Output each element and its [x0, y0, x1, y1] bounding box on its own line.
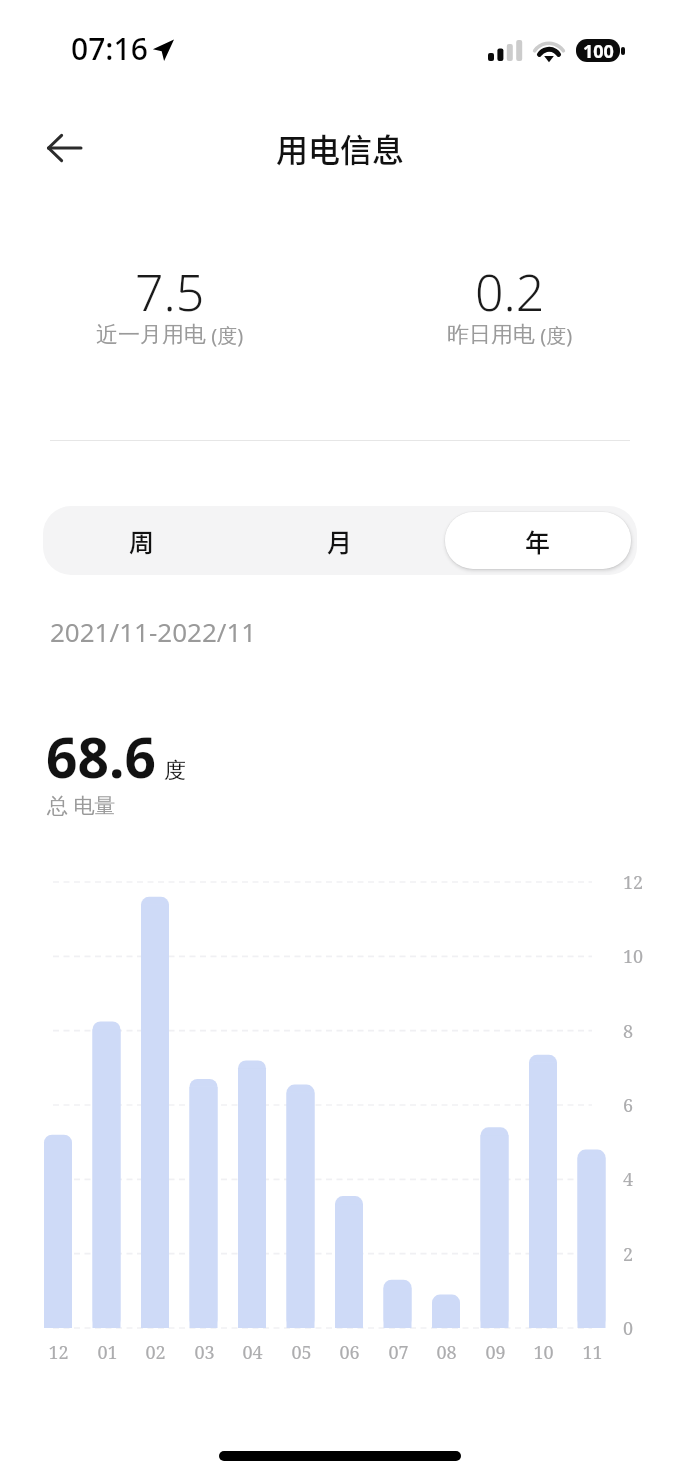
staticText: 2021/11-2022/11 [50, 614, 257, 649]
staticText: 近一月用电 [96, 321, 206, 349]
staticText: 总 电量 [47, 791, 116, 820]
button[interactable]: 月 [247, 512, 433, 569]
staticText: 7.5 [135, 258, 205, 326]
staticText: 10 [533, 1340, 554, 1364]
staticText: 周 [129, 523, 155, 559]
button[interactable]: 年 [445, 512, 631, 569]
staticText: 度 [164, 757, 186, 785]
staticText: 11 [582, 1340, 603, 1364]
staticText: 10 [623, 944, 644, 969]
staticText: 100 [583, 39, 614, 62]
staticText: 01 [97, 1340, 118, 1364]
staticText: 8 [623, 1019, 634, 1044]
staticText: 06 [339, 1340, 360, 1364]
staticText: (度) [535, 322, 573, 349]
staticText: 2 [623, 1242, 634, 1267]
staticText: 用电信息 [276, 125, 405, 171]
staticText: 68.6 [46, 719, 156, 794]
staticText: 05 [291, 1340, 312, 1364]
staticText: 09 [485, 1340, 506, 1364]
staticText: 0.2 [475, 258, 545, 326]
staticText: 07:16 [71, 28, 148, 69]
button[interactable]: 周 [49, 512, 235, 569]
staticText: 昨日用电 [447, 321, 535, 349]
staticText: 08 [436, 1340, 457, 1364]
staticText: 月 [327, 523, 353, 559]
button[interactable]: Back [32, 116, 96, 180]
staticText: 年 [525, 523, 551, 559]
staticText: 04 [242, 1340, 263, 1364]
staticText: 12 [623, 870, 644, 895]
staticText: 03 [194, 1340, 215, 1364]
staticText: 12 [48, 1340, 69, 1364]
staticText: (度) [206, 322, 244, 349]
staticText: 6 [623, 1093, 634, 1118]
staticText: 07 [388, 1340, 409, 1364]
staticText: 0 [623, 1316, 634, 1341]
staticText: 02 [145, 1340, 166, 1364]
staticText: 4 [623, 1167, 634, 1192]
